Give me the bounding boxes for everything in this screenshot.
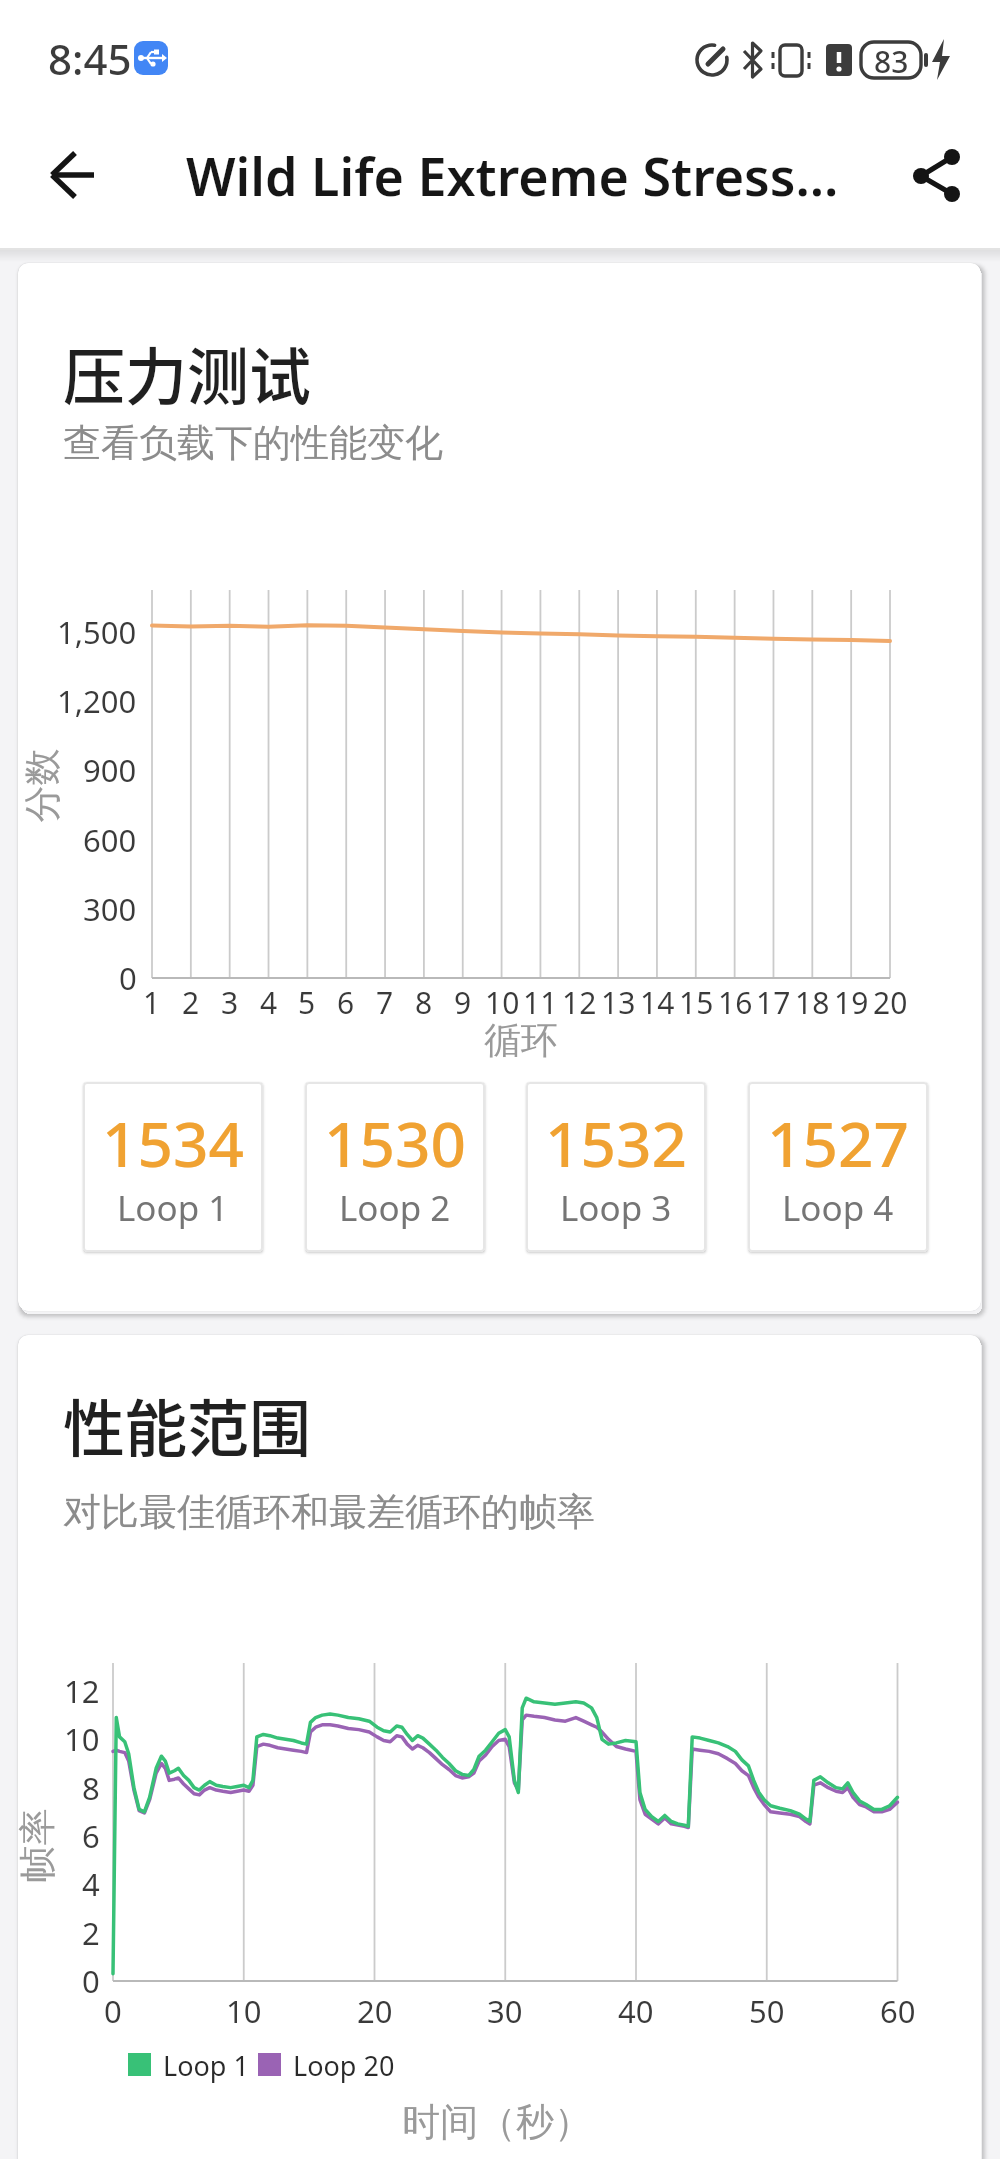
staticText: 20 <box>357 1990 393 2032</box>
staticText: 0 <box>82 1960 100 2002</box>
button[interactable] <box>526 1082 706 1252</box>
staticText: 0 <box>119 957 137 999</box>
staticText: 查看负载下的性能变化 <box>63 419 443 467</box>
staticText: 1532 <box>545 1101 687 1185</box>
staticText: 循环 <box>484 1017 558 1064</box>
button[interactable] <box>305 1082 485 1252</box>
staticText: 9 <box>454 982 472 1023</box>
staticText: 1,500 <box>57 611 137 653</box>
staticText: Loop 20 <box>293 2047 395 2084</box>
staticText: 14 <box>640 982 675 1023</box>
staticText: 6 <box>337 982 355 1023</box>
staticText: 时间（秒） <box>402 2098 592 2146</box>
staticText: 10 <box>226 1990 262 2032</box>
staticText: Loop 2 <box>339 1184 451 1232</box>
staticText: 4 <box>82 1863 100 1905</box>
staticText: 11 <box>523 982 558 1023</box>
staticText: Loop 1 <box>163 2047 249 2084</box>
staticText: 8:45 <box>48 30 132 87</box>
button[interactable] <box>83 1082 263 1252</box>
staticText: 5 <box>298 982 316 1023</box>
staticText: 2 <box>82 1912 100 1954</box>
staticText: 4 <box>260 982 278 1023</box>
button[interactable] <box>890 140 980 215</box>
staticText: 帧率 <box>13 1808 60 1882</box>
staticText: 20 <box>873 982 908 1023</box>
staticText: Loop 1 <box>117 1184 229 1232</box>
staticText: 10 <box>64 1718 100 1760</box>
staticText: 0 <box>104 1990 122 2032</box>
staticText: 40 <box>618 1990 654 2032</box>
staticText: 8 <box>82 1767 100 1809</box>
staticText: 1527 <box>767 1101 909 1185</box>
staticText: 17 <box>756 982 791 1023</box>
staticText: Wild Life Extreme Stress... <box>186 140 839 211</box>
staticText: Loop 4 <box>782 1184 894 1232</box>
staticText: 50 <box>749 1990 785 2032</box>
staticText: 3 <box>221 982 239 1023</box>
staticText: 12 <box>562 982 597 1023</box>
button[interactable] <box>30 145 120 215</box>
staticText: Loop 3 <box>560 1184 672 1232</box>
staticText: 分数 <box>18 748 65 822</box>
staticText: 7 <box>376 982 394 1023</box>
staticText: 1530 <box>324 1101 466 1185</box>
staticText: 性能范围 <box>63 1380 312 1470</box>
staticText: 8 <box>415 982 433 1023</box>
staticText: 压力测试 <box>63 328 312 418</box>
staticText: 300 <box>83 888 137 930</box>
staticText: 13 <box>601 982 636 1023</box>
staticText: 1,200 <box>57 680 137 722</box>
staticText: 2 <box>182 982 200 1023</box>
staticText: 12 <box>64 1670 100 1712</box>
staticText: 对比最佳循环和最差循环的帧率 <box>63 1488 595 1536</box>
staticText: 83 <box>874 41 909 82</box>
staticText: 30 <box>487 1990 523 2032</box>
staticText: 10 <box>485 982 520 1023</box>
staticText: 60 <box>880 1990 916 2032</box>
staticText: 1 <box>143 982 161 1023</box>
staticText: 18 <box>795 982 830 1023</box>
staticText: 6 <box>82 1815 100 1857</box>
staticText: 900 <box>83 749 137 791</box>
staticText: 19 <box>834 982 869 1023</box>
button[interactable] <box>748 1082 928 1252</box>
staticText: 600 <box>83 819 137 861</box>
staticText: 1534 <box>102 1101 244 1185</box>
staticText: 15 <box>679 982 714 1023</box>
staticText: 16 <box>718 982 753 1023</box>
